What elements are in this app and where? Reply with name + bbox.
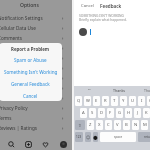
- staticText: SOMETHING ISN'T WORKING: [79, 13, 125, 17]
- staticText: U: [131, 98, 135, 104]
- staticText: ⇧: [78, 123, 82, 128]
- staticText: I: [141, 98, 143, 104]
- staticText: K: [145, 110, 148, 116]
- staticText: General Feedback: [11, 81, 50, 87]
- staticText: Options: [20, 2, 39, 9]
- button[interactable]: Account: [0, 53, 72, 63]
- button[interactable]: M: [141, 120, 148, 130]
- staticText: Y: [122, 98, 125, 104]
- button[interactable]: Linked Accounts: [0, 73, 72, 83]
- staticText: Terms: [0, 115, 12, 121]
- staticText: Notification Settings: [0, 15, 43, 21]
- staticText: Thanks: [113, 88, 126, 93]
- staticText: G: [118, 110, 122, 116]
- button[interactable]: X: [96, 120, 103, 130]
- button[interactable]: Story Settings: [0, 43, 72, 53]
- staticText: Cancel: [81, 3, 95, 9]
- staticText: Spam or Abuse: [14, 57, 47, 63]
- button[interactable]: R: [102, 96, 109, 106]
- button[interactable]: Spam or Abuse: [0, 54, 62, 66]
- staticText: space: [114, 135, 123, 139]
- button[interactable]: Thanks: [104, 86, 134, 95]
- staticText: H: [127, 110, 131, 116]
- button[interactable]: Q: [75, 96, 82, 106]
- button[interactable]: U: [129, 96, 136, 106]
- button[interactable]: T: [111, 96, 118, 106]
- button[interactable]: Comments: [0, 33, 72, 43]
- button[interactable]: Language: [0, 93, 72, 103]
- staticText: Thank: [144, 88, 150, 93]
- staticText: J: [137, 110, 139, 116]
- staticText: ☺: [86, 135, 91, 140]
- staticText: Feedback: [100, 3, 122, 9]
- button[interactable]: I: [138, 96, 145, 106]
- button[interactable]: S: [89, 108, 96, 118]
- staticText: 123: [76, 135, 82, 139]
- button[interactable]: General Feedback: [0, 78, 62, 90]
- button[interactable]: H: [125, 108, 132, 118]
- button[interactable]: Contacts: [0, 83, 72, 93]
- staticText: N: [134, 122, 138, 128]
- staticText: Account: [0, 55, 16, 61]
- button[interactable]: V: [114, 120, 121, 130]
- button[interactable]: K: [143, 108, 150, 118]
- button[interactable]: ☺: [85, 132, 91, 142]
- staticText: Language: [0, 95, 20, 101]
- button[interactable]: Privacy Policy: [0, 103, 72, 113]
- button[interactable]: Cellular Data Use: [0, 23, 72, 33]
- button[interactable]: E: [93, 96, 100, 106]
- staticText: return: [144, 135, 150, 139]
- button[interactable]: Notification Settings: [0, 13, 72, 23]
- staticText: V: [116, 122, 119, 128]
- button[interactable]: B: [123, 120, 130, 130]
- button[interactable]: W: [84, 96, 91, 106]
- staticText: T: [113, 98, 116, 104]
- button[interactable]: Activity: [40, 139, 50, 149]
- button[interactable]: N: [132, 120, 139, 130]
- button[interactable]: Original Posts: [0, 63, 72, 73]
- button[interactable]: J: [134, 108, 141, 118]
- button[interactable]: Terms: [0, 113, 72, 123]
- staticText: C: [107, 122, 110, 128]
- button[interactable]: A: [80, 108, 87, 118]
- button[interactable]: Search: [6, 139, 16, 149]
- staticText: Cellular Data Use: [0, 25, 36, 31]
- staticText: R: [104, 98, 107, 104]
- button[interactable]: “”: [74, 86, 104, 95]
- staticText: Something Isn't Working: [4, 69, 58, 75]
- button[interactable]: Profile: [58, 139, 68, 149]
- button[interactable]: space: [100, 132, 136, 142]
- button[interactable]: G: [116, 108, 123, 118]
- staticText: ⬤: [93, 135, 98, 140]
- button[interactable]: Y: [120, 96, 127, 106]
- button[interactable]: New post: [23, 139, 33, 149]
- staticText: F: [109, 110, 112, 116]
- button[interactable]: Cancel: [0, 90, 62, 101]
- button[interactable]: Cancel: [81, 0, 95, 11]
- button[interactable]: O: [147, 96, 150, 106]
- button[interactable]: 123: [75, 132, 83, 142]
- staticText: M: [143, 122, 147, 128]
- button[interactable]: Thank: [134, 86, 150, 95]
- staticText: B: [125, 122, 128, 128]
- button[interactable]: ⇧: [75, 120, 85, 130]
- button[interactable]: C: [105, 120, 112, 130]
- staticText: Briefly explain what happened.: [79, 17, 127, 21]
- button[interactable]: return: [138, 132, 150, 142]
- button[interactable]: D: [98, 108, 105, 118]
- button[interactable]: F: [107, 108, 114, 118]
- staticText: Reviews | Ratings: [0, 125, 38, 131]
- staticText: Report a Problem: [11, 46, 50, 52]
- staticText: Cancel: [23, 93, 38, 99]
- staticText: O: [149, 98, 150, 104]
- button[interactable]: Z: [87, 120, 94, 130]
- staticText: A: [82, 110, 85, 116]
- button[interactable]: Something Isn't Working: [0, 66, 62, 78]
- staticText: Privacy Policy: [0, 105, 28, 111]
- button[interactable]: Reviews | Ratings: [0, 123, 72, 133]
- staticText: Contacts: [0, 85, 18, 91]
- staticText: “”: [88, 88, 91, 93]
- staticText: Q: [77, 98, 81, 104]
- button[interactable]: ⬤: [93, 132, 98, 142]
- staticText: D: [100, 110, 104, 116]
